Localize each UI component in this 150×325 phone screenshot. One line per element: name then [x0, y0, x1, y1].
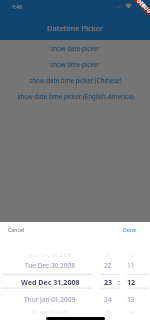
staticText: show date time picker (English-America) [17, 92, 134, 100]
button[interactable]: Cancel [7, 224, 26, 235]
staticText: Tue Dec 30,2008 [25, 261, 75, 270]
button[interactable]: show date picker [0, 40, 150, 56]
staticText: Mon Dec 29,2008 [28, 251, 72, 258]
staticText: 24 [104, 295, 112, 304]
staticText: Datetime Picker [47, 23, 103, 33]
staticText: 12 [127, 277, 136, 287]
staticText: show time picker [50, 60, 100, 68]
staticText: Fri Jan 02,2009 [32, 308, 69, 315]
button[interactable]: show date time picker (English-America) [0, 88, 150, 104]
staticText: Wed Dec 31,2008 [21, 277, 80, 287]
staticText: 21 [105, 251, 112, 258]
staticText: 22 [104, 261, 112, 270]
button[interactable]: show date time picker (Chinese) [0, 72, 150, 88]
staticText: DEBUG [135, 0, 150, 15]
staticText: Cancel [8, 226, 25, 233]
staticText: Done [123, 226, 137, 233]
button[interactable]: show time picker [0, 56, 150, 72]
staticText: 11 [127, 261, 135, 270]
staticText: show date picker [50, 44, 100, 52]
staticText: : [118, 277, 120, 287]
staticText: 13 [127, 295, 135, 304]
button[interactable]: Done [122, 224, 138, 235]
staticText: 25 [105, 308, 112, 315]
staticText: 1:46 [12, 4, 22, 11]
staticText: 23 [104, 277, 113, 287]
staticText: Thur Jan 01,2009 [24, 295, 76, 304]
staticText: 14 [128, 308, 135, 315]
staticText: 10 [128, 251, 135, 258]
staticText: show date time picker (Chinese) [29, 76, 122, 84]
